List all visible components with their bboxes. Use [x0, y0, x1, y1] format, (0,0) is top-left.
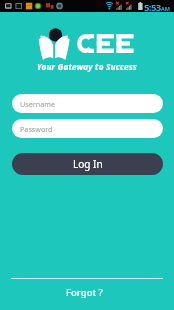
staticText: Password — [20, 124, 53, 134]
button[interactable]: Forgot ? — [0, 285, 171, 299]
staticText: Log In — [73, 157, 103, 171]
staticText: Forgot ? — [66, 286, 103, 299]
button[interactable]: Username — [12, 94, 163, 113]
staticText: Your Gateway to Success — [37, 61, 137, 72]
button[interactable]: Password — [12, 119, 163, 138]
staticText: 5:53 — [144, 1, 161, 13]
button[interactable]: Log In — [12, 153, 163, 175]
staticText: AM — [161, 5, 170, 12]
staticText: Username — [20, 99, 55, 109]
